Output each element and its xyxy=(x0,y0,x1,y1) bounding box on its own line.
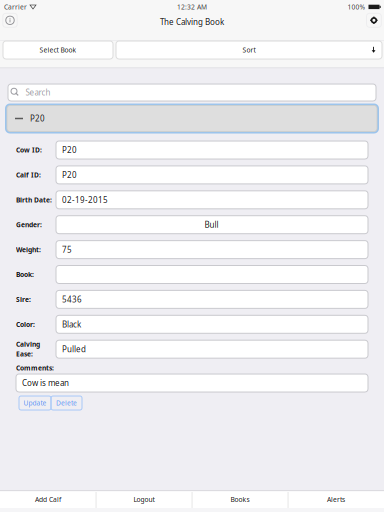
staticText: 100% xyxy=(347,3,365,11)
staticText: P20 xyxy=(62,145,77,155)
staticText: Book: xyxy=(16,270,34,279)
staticText: Comments: xyxy=(16,364,54,372)
button[interactable]: Settings xyxy=(366,13,381,27)
button[interactable]: Delete xyxy=(51,396,82,410)
staticText: Select Book xyxy=(39,46,76,54)
staticText: Add Calf xyxy=(35,495,61,504)
staticText: Search xyxy=(25,87,50,98)
button[interactable]: Logout xyxy=(96,491,192,508)
staticText: Update xyxy=(23,399,46,407)
staticText: Birth Date: xyxy=(16,195,52,204)
staticText: 75 xyxy=(62,244,72,255)
staticText: Calf ID: xyxy=(16,170,41,179)
staticText: Sire: xyxy=(16,295,31,304)
staticText: Delete xyxy=(56,399,77,407)
staticText: P20 xyxy=(30,113,45,124)
staticText: P20 xyxy=(62,170,77,180)
staticText: Pulled xyxy=(62,344,86,354)
staticText: Weight: xyxy=(16,245,41,254)
button[interactable]: P20 xyxy=(5,103,379,133)
staticText: 5436 xyxy=(62,294,82,305)
button[interactable]: Books xyxy=(192,491,288,508)
staticText: Sort xyxy=(242,46,255,54)
staticText: Bull xyxy=(204,219,218,230)
staticText: The Calving Book xyxy=(160,17,224,27)
button[interactable]: Alerts xyxy=(288,491,384,508)
staticText: Ease: xyxy=(16,349,33,358)
staticText: Carrier xyxy=(4,3,27,11)
button[interactable]: Info xyxy=(3,13,17,27)
button[interactable]: Select Book xyxy=(3,41,113,59)
staticText: Books xyxy=(230,495,249,504)
staticText: Logout xyxy=(133,495,154,504)
button[interactable]: Add Calf xyxy=(0,491,96,508)
staticText: Color: xyxy=(16,320,35,329)
button[interactable]: Update xyxy=(19,396,51,410)
staticText: 02-19-2015 xyxy=(62,194,108,205)
staticText: Calving xyxy=(16,340,40,348)
staticText: Cow ID: xyxy=(16,146,42,154)
staticText: Alerts xyxy=(327,495,345,504)
staticText: Cow is mean xyxy=(22,378,69,388)
staticText: 12:32 AM xyxy=(177,3,207,11)
staticText: Black xyxy=(62,319,81,330)
staticText: Gender: xyxy=(16,220,42,229)
button[interactable]: Sort xyxy=(116,41,382,59)
